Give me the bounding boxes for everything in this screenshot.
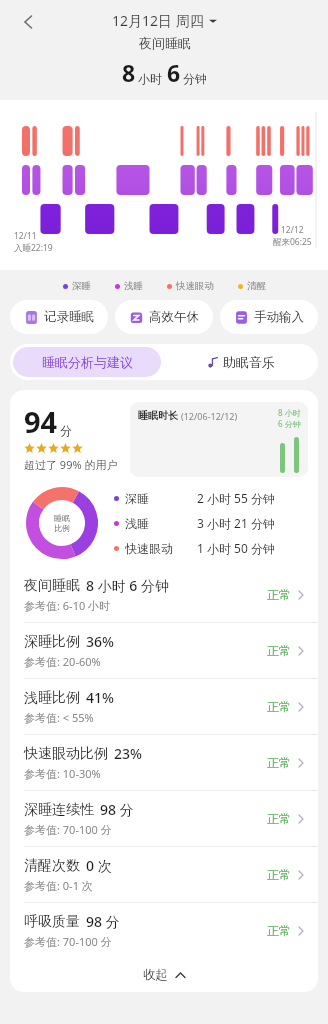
button[interactable]: 夜间睡眠 [10, 567, 318, 623]
staticText: 比例 [54, 523, 70, 533]
staticText: 98 分 [86, 912, 120, 931]
staticText: 正常 [267, 587, 291, 602]
staticText: 记录睡眠 [44, 309, 94, 325]
staticText: 夜间睡眠 [139, 35, 191, 51]
staticText: 3 小时 21 分钟 [197, 515, 275, 531]
button[interactable]: 清醒次数 [10, 847, 318, 903]
staticText: 超过了 99% 的用户 [24, 457, 118, 472]
staticText: 助眠音乐 [223, 354, 275, 370]
staticText: 6 [167, 57, 181, 88]
staticText: 23% [114, 744, 142, 763]
staticText: 睡眠 [54, 513, 70, 523]
staticText: 收起 [143, 967, 168, 983]
staticText: 夜间睡眠 [24, 577, 80, 595]
button[interactable]: 呼吸质量 [10, 903, 318, 958]
staticText: 参考值: 10-30% [24, 766, 101, 781]
staticText: 小时 [138, 71, 162, 86]
staticText: 睡眠时长 [138, 409, 178, 422]
staticText: 分 [60, 423, 72, 438]
button[interactable]: 手动输入 [220, 300, 318, 334]
staticText: 入睡22:19 [14, 242, 53, 254]
staticText: 快速眼动比例 [24, 745, 108, 763]
staticText: 8 小时 [278, 407, 301, 418]
staticText: 深睡 [72, 280, 91, 292]
staticText: 深睡比例 [24, 633, 80, 651]
staticText: 1 小时 50 分钟 [197, 540, 275, 556]
button[interactable]: 睡眠分析与建议 [13, 347, 161, 377]
staticText: 深睡连续性 [24, 801, 94, 819]
staticText: 参考值: < 55% [24, 710, 94, 725]
staticText: 浅睡 [125, 516, 149, 531]
staticText: 参考值: 70-100 分 [24, 822, 112, 837]
staticText: 12/11 [14, 230, 37, 242]
staticText: 快速眼动 [176, 280, 214, 292]
staticText: 分钟 [183, 71, 207, 86]
staticText: 2 小时 55 分钟 [197, 490, 275, 506]
staticText: 正常 [267, 923, 291, 938]
staticText: 正常 [267, 699, 291, 714]
button[interactable]: Back [14, 8, 42, 36]
staticText: 正常 [267, 867, 291, 882]
button[interactable]: 12月12日 周四 [106, 9, 223, 32]
staticText: 98 分 [100, 800, 134, 819]
button[interactable]: 浅睡比例 [10, 679, 318, 735]
button[interactable]: 深睡比例 [10, 623, 318, 679]
staticText: 醒来06:25 [273, 236, 312, 248]
staticText: 清醒 [247, 280, 266, 292]
staticText: 参考值: 20-60% [24, 654, 101, 669]
staticText: 参考值: 0-1 次 [24, 878, 93, 893]
staticText: 正常 [267, 755, 291, 770]
staticText: 正常 [267, 643, 291, 658]
button[interactable]: 收起 [10, 958, 318, 992]
staticText: 8 小时 6 分钟 [86, 576, 169, 595]
staticText: 94 [24, 402, 58, 441]
button[interactable]: 高效午休 [115, 300, 213, 334]
button[interactable]: 记录睡眠 [10, 300, 108, 334]
staticText: 参考值: 70-100 分 [24, 934, 112, 949]
staticText: 12/12 [281, 224, 304, 236]
staticText: 0 次 [86, 856, 112, 875]
staticText: 快速眼动 [125, 541, 173, 556]
staticText: 12月12日 周四 [112, 11, 204, 30]
staticText: 36% [86, 632, 114, 651]
button[interactable]: 快速眼动比例 [10, 735, 318, 791]
staticText: 深睡 [125, 491, 149, 506]
staticText: 8 [122, 57, 136, 88]
staticText: 参考值: 6-10 小时 [24, 598, 111, 613]
staticText: 睡眠分析与建议 [42, 354, 133, 370]
button[interactable]: 睡眠时长 [130, 402, 308, 477]
staticText: (12/06-12/12) [181, 410, 238, 422]
staticText: 高效午休 [149, 309, 199, 325]
button[interactable]: 深睡连续性 [10, 791, 318, 847]
staticText: 6 分钟 [278, 418, 301, 429]
staticText: 呼吸质量 [24, 913, 80, 931]
staticText: 正常 [267, 811, 291, 826]
staticText: 浅睡比例 [24, 689, 80, 707]
button[interactable]: 助眠音乐 [164, 344, 318, 380]
staticText: 浅睡 [124, 280, 143, 292]
staticText: 41% [86, 688, 114, 707]
staticText: 清醒次数 [24, 857, 80, 875]
staticText: 手动输入 [254, 309, 304, 325]
